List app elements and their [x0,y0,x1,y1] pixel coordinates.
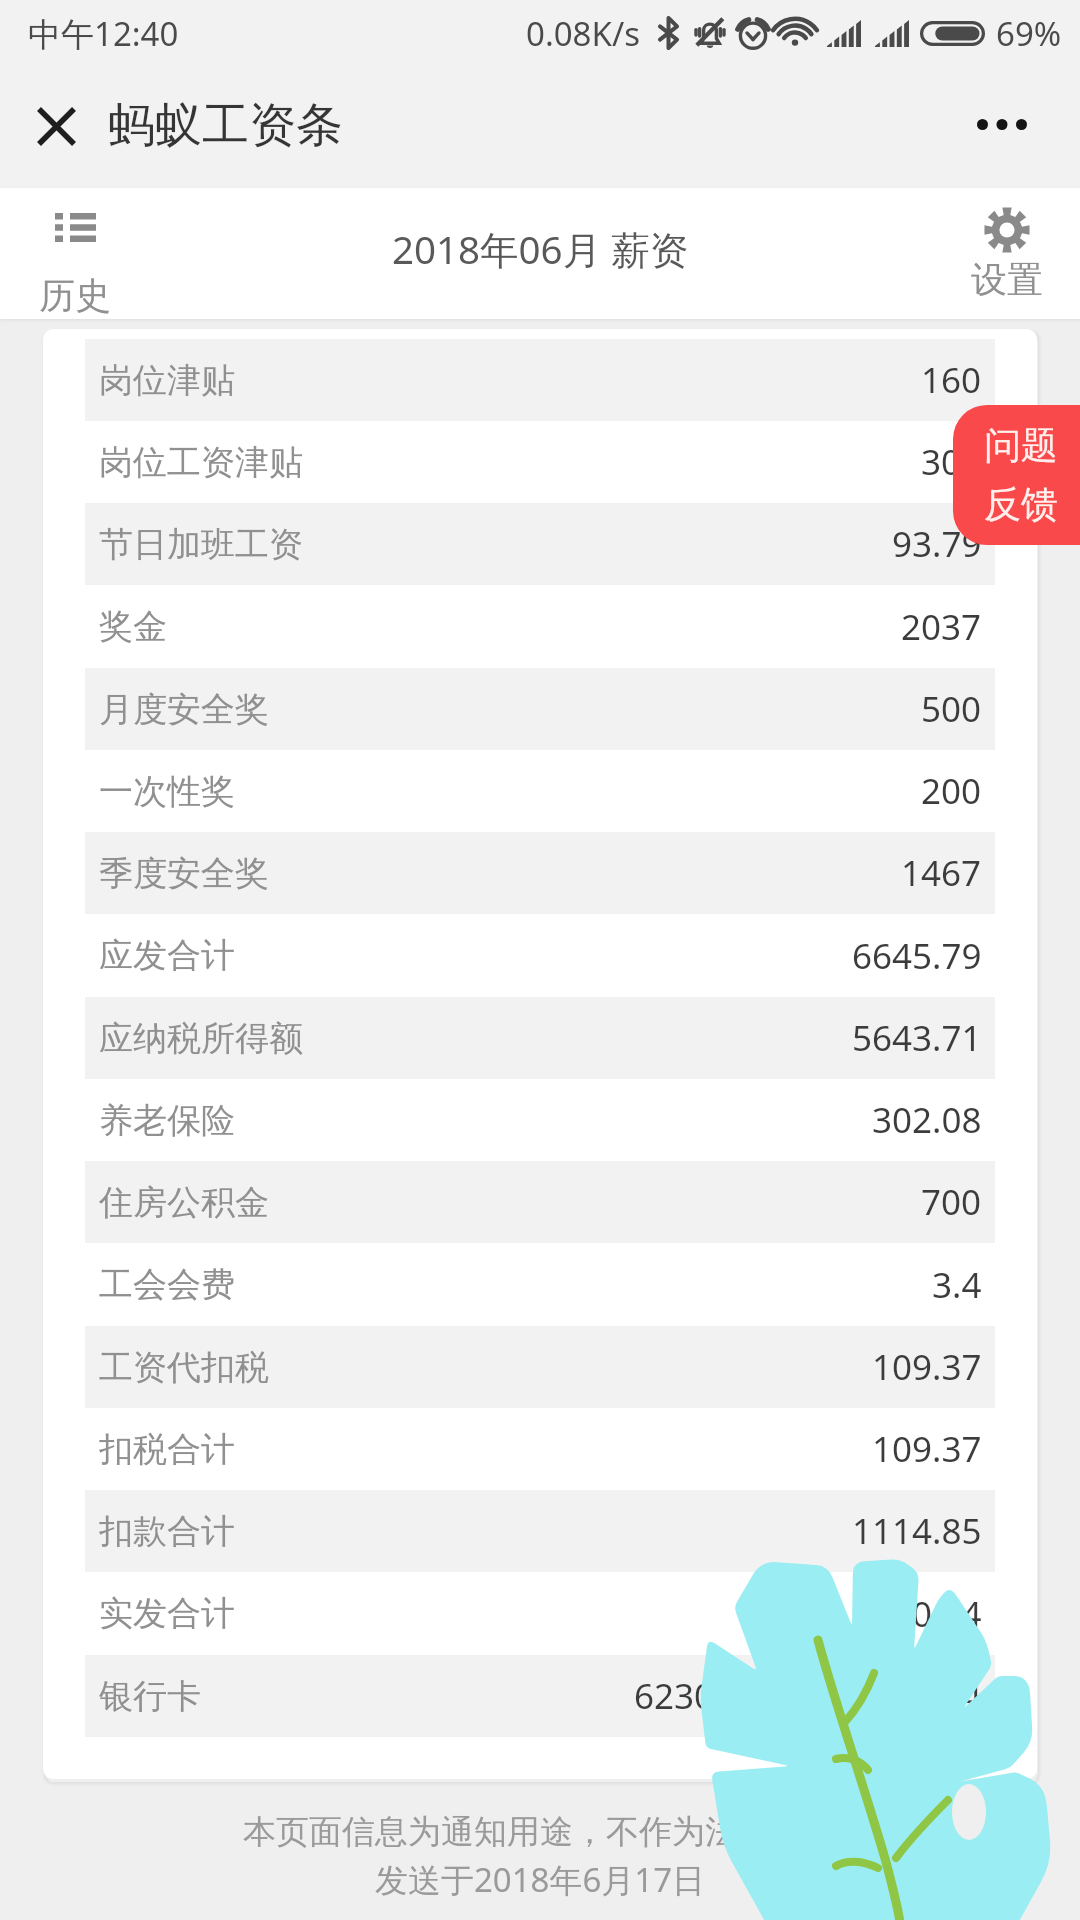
button[interactable]: 月度安全奖 [85,668,995,750]
staticText: 扣税合计 [99,1428,235,1471]
button[interactable]: 奖金 [85,585,995,668]
staticText: 69% [996,11,1062,56]
staticText: 本页面信息为通知用途，不作为法律凭证 [0,1811,1080,1853]
button[interactable]: More options [924,69,1080,185]
staticText: 5530.94 [852,1590,982,1638]
button[interactable]: 工资代扣税 [85,1326,995,1408]
button[interactable]: 银行卡 [85,1655,995,1737]
staticText: 3.4 [932,1261,982,1309]
staticText: 养老保险 [99,1099,235,1142]
button[interactable]: 应纳税所得额 [85,997,995,1079]
staticText: 中午12:40 [28,11,179,56]
button[interactable]: 扣税合计 [85,1408,995,1490]
staticText: 季度安全奖 [99,852,269,895]
staticText: 一次性奖 [99,770,235,813]
staticText: 160 [921,356,982,404]
staticText: 设置 [971,257,1043,302]
staticText: 岗位津贴 [99,359,235,402]
button[interactable]: 问题 [953,405,1080,545]
button[interactable]: 岗位津贴 [85,339,995,421]
staticText: 蚂蚁工资条 [108,96,343,155]
staticText: 应纳税所得额 [99,1017,303,1060]
staticText: 6230 5220 2664 4564 [634,1672,982,1720]
staticText: 工资代扣税 [99,1346,269,1389]
staticText: 200 [921,767,982,815]
staticText: 500 [921,685,982,733]
staticText: 300 [921,438,982,486]
staticText: 5643.71 [852,1014,982,1062]
staticText: 应发合计 [99,934,235,977]
button[interactable]: 住房公积金 [85,1161,995,1243]
staticText: 月度安全奖 [99,688,269,731]
staticText: 银行卡 [99,1675,201,1718]
staticText: 93.79 [892,520,982,568]
staticText: 岗位工资津贴 [99,441,303,484]
button[interactable]: 养老保险 [85,1079,995,1161]
staticText: 302.08 [872,1096,982,1144]
staticText: 0.08K/s [526,11,640,56]
button[interactable]: 节日加班工资 [85,503,995,585]
button[interactable]: 扣款合计 [85,1490,995,1572]
staticText: 奖金 [99,605,167,648]
button[interactable]: 季度安全奖 [85,832,995,914]
staticText: 反馈 [984,481,1058,528]
staticText: 700 [921,1178,982,1226]
button[interactable]: 历史 [22,188,128,319]
staticText: 问题 [984,422,1058,469]
button[interactable]: Close [0,66,108,188]
staticText: 109.37 [872,1425,982,1473]
staticText: 1114.85 [852,1507,982,1555]
button[interactable]: 实发合计 [85,1572,995,1655]
staticText: 工会会费 [99,1263,235,1306]
staticText: 2018年06月 薪资 [392,223,689,276]
staticText: 1467 [901,849,982,897]
button[interactable]: 岗位工资津贴 [85,421,995,503]
button[interactable]: 应发合计 [85,914,995,997]
staticText: 6645.79 [852,932,982,980]
button[interactable]: 一次性奖 [85,750,995,832]
staticText: 发送于2018年6月17日 [0,1857,1080,1902]
staticText: 实发合计 [99,1592,235,1635]
staticText: 节日加班工资 [99,523,303,566]
staticText: 住房公积金 [99,1181,269,1224]
staticText: 109.37 [872,1343,982,1391]
staticText: 2037 [901,603,982,651]
button[interactable]: 设置 [954,188,1060,319]
staticText: 历史 [39,273,111,318]
button[interactable]: 工会会费 [85,1243,995,1326]
staticText: 扣款合计 [99,1510,235,1553]
